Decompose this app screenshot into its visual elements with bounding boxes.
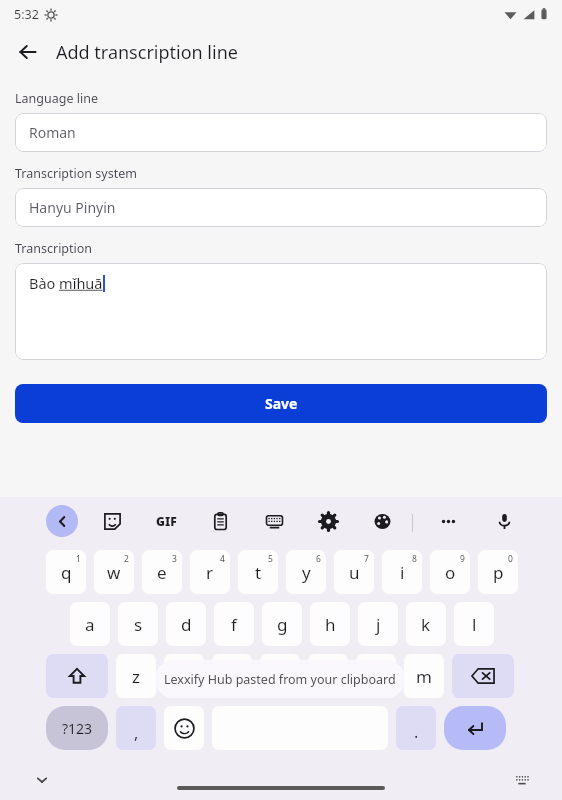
button[interactable]: Stickers — [96, 505, 128, 537]
staticText: Hanyu Pinyin — [29, 198, 116, 217]
button[interactable]: Shift — [46, 654, 108, 698]
button[interactable]: l — [454, 602, 494, 646]
staticText: p — [493, 561, 504, 584]
button[interactable]: Bào mǐhuā — [15, 263, 547, 360]
staticText: q — [61, 561, 72, 584]
button[interactable]: b — [308, 654, 348, 698]
staticText: Transcription — [15, 240, 93, 257]
button[interactable]: Hanyu Pinyin — [15, 188, 547, 227]
button[interactable]: ?123 — [46, 706, 108, 750]
staticText: 5:32 — [14, 6, 39, 23]
button[interactable]: Hide keyboard — [28, 766, 56, 794]
staticText: i — [400, 561, 405, 584]
button[interactable]: i — [382, 550, 422, 594]
button[interactable]: y — [286, 550, 326, 594]
staticText: 5 — [268, 553, 273, 565]
button[interactable]: v — [260, 654, 300, 698]
button[interactable]: e — [142, 550, 182, 594]
staticText: a — [85, 613, 95, 636]
staticText: y — [302, 561, 311, 584]
button[interactable]: m — [404, 654, 444, 698]
staticText: Bào mǐhuā — [29, 273, 103, 293]
staticText: 6 — [316, 553, 321, 565]
button[interactable]: Comma — [116, 706, 156, 750]
button[interactable]: Clipboard — [204, 505, 236, 537]
button[interactable]: z — [116, 654, 156, 698]
button[interactable]: Keyboard layout — [258, 505, 290, 537]
staticText: r — [206, 561, 214, 584]
staticText: Roman — [29, 123, 76, 142]
staticText: t — [255, 561, 262, 584]
staticText: GIF — [156, 513, 177, 529]
button[interactable]: q — [46, 550, 86, 594]
staticText: b — [323, 665, 334, 688]
button[interactable]: Enter — [444, 706, 506, 750]
button[interactable]: d — [166, 602, 206, 646]
button[interactable]: Roman — [15, 113, 547, 152]
button[interactable]: GIF — [150, 505, 182, 537]
staticText: w — [107, 561, 121, 584]
button[interactable]: Emoji — [164, 706, 204, 750]
staticText: v — [276, 665, 285, 688]
staticText: d — [181, 613, 192, 636]
staticText: m — [416, 665, 432, 688]
staticText: Save — [265, 394, 298, 413]
button[interactable]: g — [262, 602, 302, 646]
button[interactable]: Switch input method — [508, 766, 536, 794]
button[interactable]: Back — [10, 34, 46, 70]
button[interactable]: Settings — [312, 505, 344, 537]
button[interactable]: More options — [432, 505, 464, 537]
staticText: 3 — [172, 553, 177, 565]
button[interactable]: t — [238, 550, 278, 594]
staticText: 2 — [124, 553, 129, 565]
button[interactable]: u — [334, 550, 374, 594]
staticText: Add transcription line — [56, 40, 238, 65]
staticText: s — [134, 613, 143, 636]
staticText: h — [325, 613, 336, 636]
staticText: u — [349, 561, 360, 584]
button[interactable]: Period — [396, 706, 436, 750]
button[interactable]: r — [190, 550, 230, 594]
button[interactable]: c — [212, 654, 252, 698]
staticText: f — [231, 613, 237, 636]
staticText: 9 — [460, 553, 465, 565]
button[interactable]: h — [310, 602, 350, 646]
button[interactable]: o — [430, 550, 470, 594]
staticText: . — [414, 721, 419, 743]
button[interactable]: Save — [15, 384, 547, 423]
staticText: Language line — [15, 90, 98, 107]
button[interactable]: f — [214, 602, 254, 646]
staticText: j — [376, 613, 381, 636]
staticText: , — [134, 722, 139, 744]
button[interactable]: n — [356, 654, 396, 698]
staticText: l — [472, 613, 477, 636]
button[interactable]: p — [478, 550, 518, 594]
button[interactable]: j — [358, 602, 398, 646]
staticText: g — [277, 613, 288, 636]
staticText: k — [421, 613, 431, 636]
staticText: c — [228, 665, 237, 688]
staticText: Lexxify Hub pasted from your clipboard — [164, 671, 396, 688]
button[interactable]: k — [406, 602, 446, 646]
staticText: 7 — [364, 553, 369, 565]
button[interactable]: x — [164, 654, 204, 698]
staticText: 1 — [76, 553, 81, 565]
staticText: 8 — [412, 553, 417, 565]
staticText: e — [157, 561, 167, 584]
staticText: 4 — [220, 553, 225, 565]
staticText: ?123 — [62, 719, 93, 738]
staticText: o — [445, 561, 456, 584]
staticText: 0 — [508, 553, 513, 565]
button[interactable]: s — [118, 602, 158, 646]
staticText: n — [371, 665, 382, 688]
button[interactable]: Voice input — [488, 505, 520, 537]
button[interactable]: Collapse toolbar — [46, 505, 78, 537]
button[interactable]: a — [70, 602, 110, 646]
staticText: Transcription system — [15, 165, 137, 182]
button[interactable]: w — [94, 550, 134, 594]
button[interactable]: Backspace — [452, 654, 514, 698]
staticText: x — [180, 665, 189, 688]
staticText: z — [132, 665, 140, 688]
button[interactable]: Theme — [366, 505, 398, 537]
